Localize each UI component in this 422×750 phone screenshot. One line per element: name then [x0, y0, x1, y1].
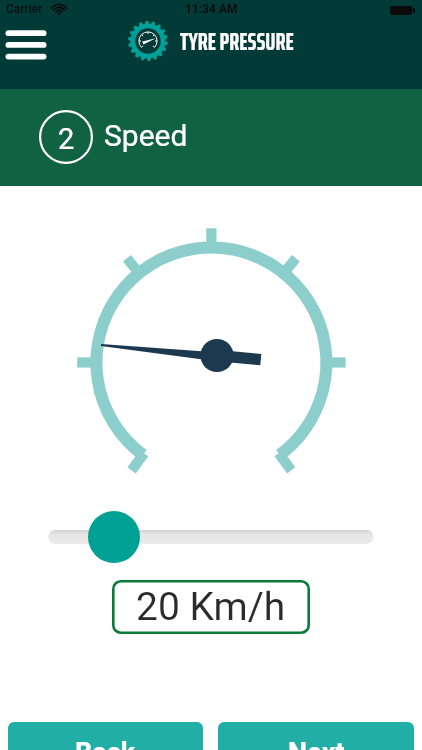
button[interactable]: Next	[218, 722, 414, 750]
staticText: Carrier	[6, 2, 43, 16]
staticText: 11:34 AM	[185, 2, 238, 16]
staticText: 20 Km/h	[136, 584, 286, 630]
staticText: TYRE PRESSURE	[180, 23, 294, 61]
staticText: Back	[75, 737, 136, 750]
button[interactable]: 20 Km/h	[112, 580, 310, 634]
button[interactable]: Open navigation menu	[0, 22, 52, 68]
staticText: 2	[58, 122, 75, 156]
button[interactable]: Back	[8, 722, 203, 750]
staticText: Speed	[104, 118, 188, 153]
staticText: Next	[288, 737, 345, 750]
button[interactable]: Speed slider	[0, 508, 422, 566]
